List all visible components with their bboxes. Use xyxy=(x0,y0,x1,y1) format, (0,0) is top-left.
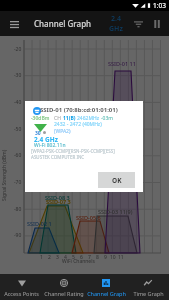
staticText: SSID-05 6 xyxy=(76,214,101,221)
staticText: WiFi Channels xyxy=(62,258,95,265)
staticText: 11(B) xyxy=(63,115,77,122)
staticText: 5 xyxy=(72,254,75,261)
staticText: -03m xyxy=(101,115,114,122)
staticText: 2462MHz xyxy=(77,115,101,122)
staticText: SSID-02 1 xyxy=(27,220,52,227)
button[interactable]: 2.4 xyxy=(106,12,126,36)
staticText: Access Points xyxy=(4,290,39,297)
staticText: 2.4 GHz xyxy=(34,135,58,144)
staticText: 8 xyxy=(96,254,99,261)
staticText: 4 xyxy=(64,254,67,261)
staticText: -50 xyxy=(14,126,22,133)
button[interactable]: Time Graph xyxy=(127,274,169,300)
staticText: 1 xyxy=(40,254,43,261)
staticText: ASUSTEK COMPUTER INC xyxy=(31,154,85,160)
staticText: 30 xyxy=(35,130,41,137)
staticText: -60 xyxy=(14,152,22,159)
staticText: 1:03 xyxy=(153,1,166,10)
staticText: (WPA2) xyxy=(54,128,71,135)
button[interactable]: Channel Graph xyxy=(85,274,127,300)
staticText: 10 xyxy=(110,254,116,261)
staticText: [WPA2-PSK-CCMP][RSN-PSK-CCMP][ESS] xyxy=(31,148,115,154)
staticText: -30dBm xyxy=(31,115,50,122)
staticText: 11 xyxy=(118,254,124,261)
button[interactable]: Pause scanning xyxy=(147,14,167,34)
staticText: -90 xyxy=(14,232,22,239)
staticText: -70 xyxy=(14,179,22,186)
staticText: 2432 - 2472 (40MHz) xyxy=(54,121,102,128)
staticText: 9 xyxy=(104,254,107,261)
staticText: SSID-07 3 xyxy=(46,198,71,205)
staticText: -40 xyxy=(14,99,22,106)
staticText: SSID-01 11 xyxy=(108,60,136,67)
button[interactable]: Channel Rating xyxy=(43,274,85,300)
staticText: -80 xyxy=(14,206,22,213)
staticText: Signal Strength (dBm) xyxy=(1,149,8,201)
staticText: Channel Graph xyxy=(87,290,126,297)
staticText: -30 xyxy=(14,72,22,79)
button[interactable]: Access Points xyxy=(0,274,43,300)
staticText: 3 xyxy=(56,254,59,261)
staticText: Channel Rating xyxy=(44,290,84,297)
button[interactable]: Filter xyxy=(128,14,148,34)
staticText: CH xyxy=(54,115,63,122)
staticText: Wi-Fi 802.11n xyxy=(34,142,66,149)
staticText: 2.4 xyxy=(111,14,121,24)
staticText: OK xyxy=(112,176,122,185)
staticText: GHz xyxy=(109,24,123,34)
staticText: -20 xyxy=(14,46,22,53)
staticText: Channel Graph xyxy=(34,18,92,29)
staticText: 7 xyxy=(88,254,91,261)
staticText: 6 xyxy=(80,254,83,261)
button[interactable]: OK xyxy=(98,172,135,188)
staticText: SSID-03 11(9) xyxy=(98,208,133,215)
staticText: 2 xyxy=(48,254,51,261)
staticText: SSID-01 (70:8b:cd:01:01:01) xyxy=(40,106,118,114)
staticText: Time Graph xyxy=(133,290,164,297)
button[interactable]: Open navigation drawer xyxy=(3,13,25,35)
staticText: SSID-08 3 xyxy=(45,194,70,201)
